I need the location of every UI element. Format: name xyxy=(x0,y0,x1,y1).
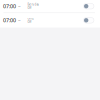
button[interactable]: 07:00 xyxy=(0,0,100,12)
staticText: 07:00 xyxy=(3,17,16,24)
staticText: Off xyxy=(27,20,31,24)
staticText: Once xyxy=(27,17,34,20)
staticText: 07:00 xyxy=(3,3,16,10)
staticText: Every day xyxy=(27,3,38,6)
button[interactable]: 07:00 xyxy=(0,13,100,27)
staticText: Off xyxy=(27,6,31,10)
staticText: – xyxy=(16,3,21,10)
staticText: – xyxy=(16,17,21,24)
